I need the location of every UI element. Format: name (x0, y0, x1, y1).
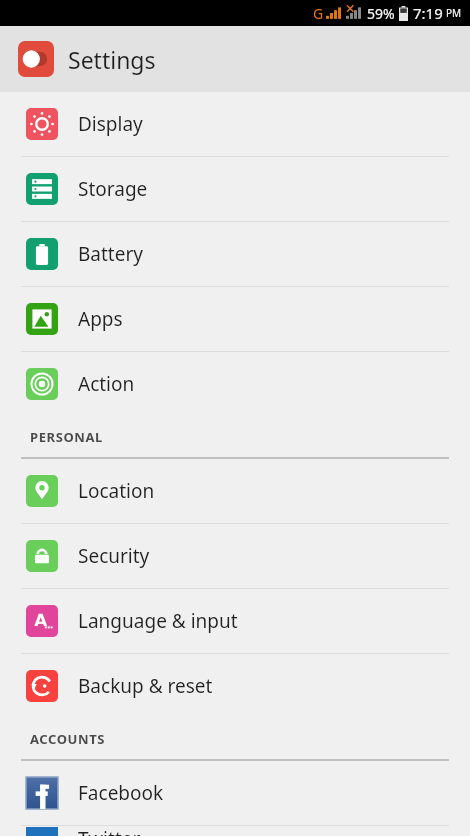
staticText: Settings (68, 44, 156, 75)
staticText: PM (446, 6, 462, 20)
button[interactable]: Apps (0, 287, 470, 351)
staticText: G (313, 4, 324, 23)
staticText: Display (78, 111, 143, 137)
staticText: PERSONAL (30, 428, 103, 446)
staticText: Security (78, 543, 150, 569)
staticText: 59% (367, 4, 395, 23)
button[interactable]: Twitter (0, 826, 470, 836)
button[interactable]: Action (0, 352, 470, 416)
staticText: Action (78, 371, 135, 397)
button[interactable]: Display (0, 92, 470, 156)
staticText: Backup & reset (78, 673, 213, 699)
staticText: Apps (78, 306, 123, 332)
button[interactable]: Language & input (0, 589, 470, 653)
button[interactable]: Backup & reset (0, 654, 470, 718)
button[interactable]: Location (0, 459, 470, 523)
staticText: Location (78, 478, 155, 504)
staticText: Battery (78, 241, 143, 267)
staticText: Storage (78, 176, 148, 202)
button[interactable]: Facebook (0, 761, 470, 825)
staticText: 7:19 (413, 3, 443, 23)
staticText: ACCOUNTS (30, 730, 106, 748)
button[interactable]: Storage (0, 157, 470, 221)
button[interactable]: Battery (0, 222, 470, 286)
staticText: Facebook (78, 780, 164, 806)
staticText: Twitter (78, 826, 141, 836)
button[interactable]: Security (0, 524, 470, 588)
staticText: Language & input (78, 608, 238, 634)
